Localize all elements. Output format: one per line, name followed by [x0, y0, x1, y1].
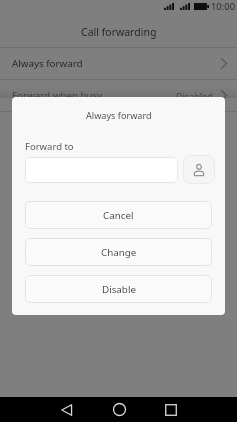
- button[interactable]: Home: [93, 397, 145, 422]
- staticText: Forward to: [25, 140, 74, 153]
- button[interactable]: Cancel: [25, 201, 212, 229]
- staticText: Disabled: [176, 90, 213, 102]
- staticText: Disable: [102, 283, 136, 296]
- staticText: Always forward: [12, 57, 83, 70]
- button[interactable]: Change: [25, 238, 212, 266]
- button[interactable]: Recents: [145, 397, 197, 422]
- button[interactable]: Pick contact: [183, 155, 215, 184]
- button[interactable]: Forward when busy: [0, 80, 237, 111]
- staticText: 10:00: [211, 0, 236, 13]
- button[interactable]: Always forward: [0, 48, 237, 79]
- button[interactable]: Disable: [25, 275, 212, 303]
- staticText: Cancel: [103, 209, 134, 222]
- button[interactable]: Back: [41, 397, 93, 422]
- staticText: Forward when busy: [12, 89, 103, 102]
- staticText: Call forwarding: [81, 25, 157, 39]
- button[interactable]: [25, 157, 178, 183]
- staticText: Change: [101, 246, 137, 259]
- staticText: Always forward: [86, 109, 152, 121]
